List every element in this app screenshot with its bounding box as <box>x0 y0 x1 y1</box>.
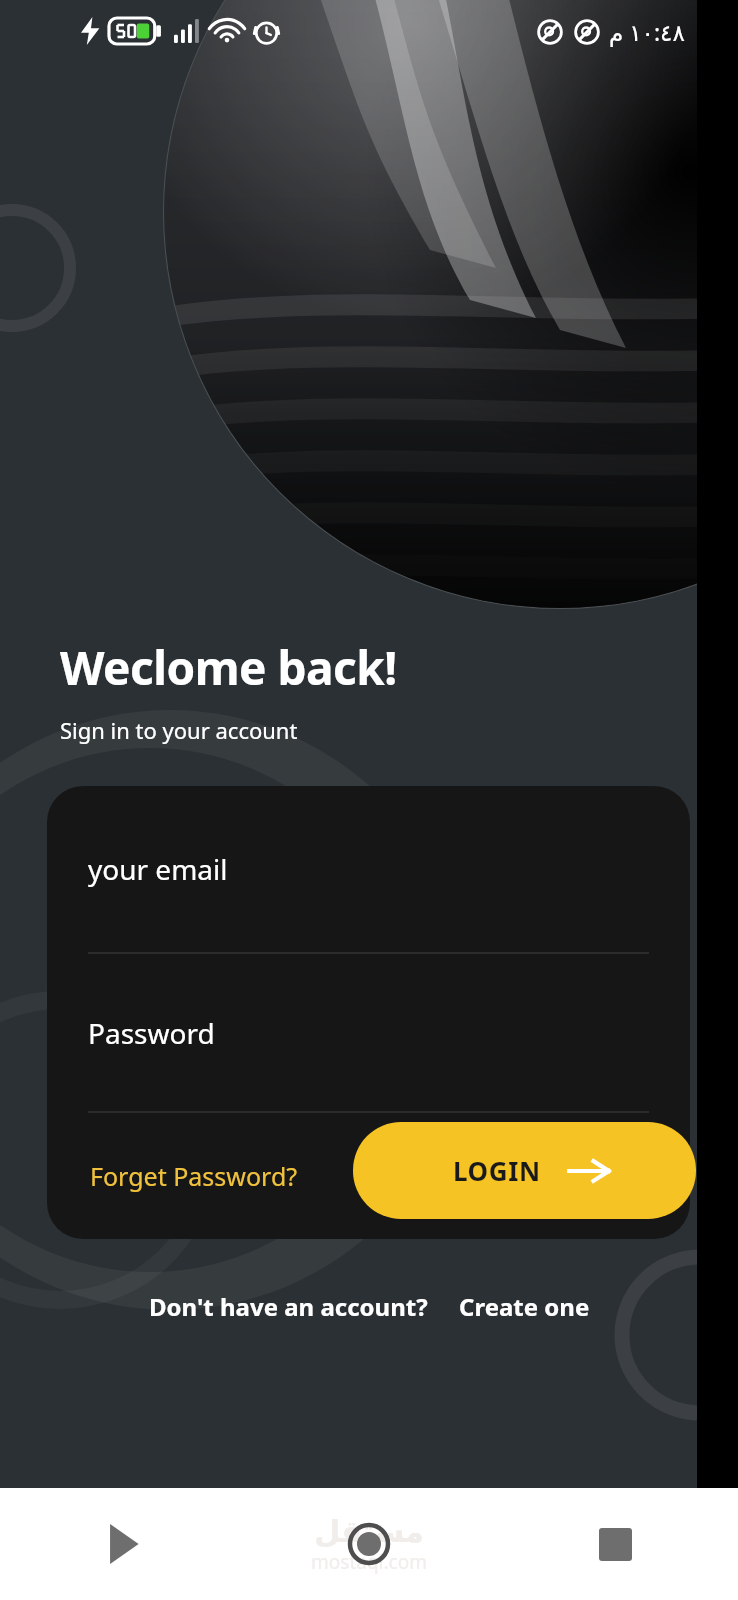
button[interactable]: Recent apps <box>492 1488 738 1600</box>
button[interactable]: Password <box>47 954 690 1111</box>
staticText: LOGIN <box>453 1153 541 1188</box>
staticText: Create one <box>459 1290 590 1323</box>
button[interactable]: Create one <box>459 1290 590 1323</box>
staticText: Don't have an account? <box>149 1290 428 1323</box>
staticText: Sign in to your account <box>60 715 298 745</box>
button[interactable]: Back <box>0 1488 246 1600</box>
staticText: Weclome back! <box>60 636 397 699</box>
staticText: your email <box>88 850 228 888</box>
staticText: Forget Password? <box>90 1159 298 1193</box>
staticText: Password <box>88 1014 215 1052</box>
button[interactable]: LOGIN <box>353 1122 696 1219</box>
button[interactable]: Home <box>246 1488 492 1600</box>
staticText: mostaql.com <box>311 1549 427 1575</box>
staticText: مستقل <box>314 1514 424 1549</box>
button[interactable]: your email <box>47 786 690 952</box>
staticText: ١٠:٤٨ م <box>609 16 685 47</box>
button[interactable]: Forget Password? <box>88 1151 300 1201</box>
